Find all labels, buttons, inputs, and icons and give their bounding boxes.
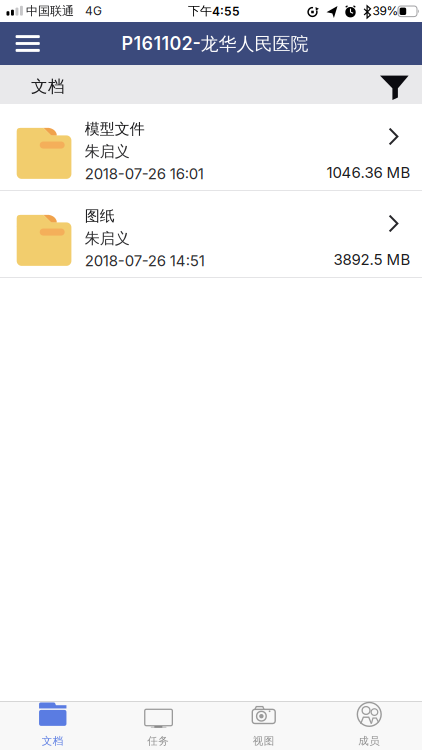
staticText: 下午4:55 [188,3,240,19]
staticText: 2018-07-26 14:51 [85,252,205,270]
staticText: 朱启义 [85,142,130,161]
staticText: 2018-07-26 16:01 [85,165,204,183]
staticText: 4G [85,3,102,18]
staticText: 朱启义 [85,229,130,248]
staticText: 中国联通 [26,3,74,19]
staticText: 模型文件 [85,119,145,138]
staticText: 任务 [147,734,169,748]
button[interactable]: 视图 [211,701,316,750]
button[interactable]: Filter [372,65,414,104]
staticText: 图纸 [85,206,115,225]
staticText: 文档 [31,76,65,97]
button[interactable]: 文档 [0,701,105,750]
staticText: 1046.36 MB [326,163,410,182]
button[interactable]: 任务 [105,701,211,750]
button[interactable]: Menu [0,22,54,65]
staticText: 3892.5 MB [333,250,410,269]
button[interactable]: 图纸 [0,191,422,278]
staticText: P161102-龙华人民医院 [121,32,308,55]
staticText: 成员 [358,734,380,748]
staticText: 视图 [253,734,275,748]
staticText: 39% [372,3,398,18]
button[interactable]: 模型文件 [0,104,422,191]
staticText: 文档 [42,734,64,748]
button[interactable]: 成员 [316,701,422,750]
